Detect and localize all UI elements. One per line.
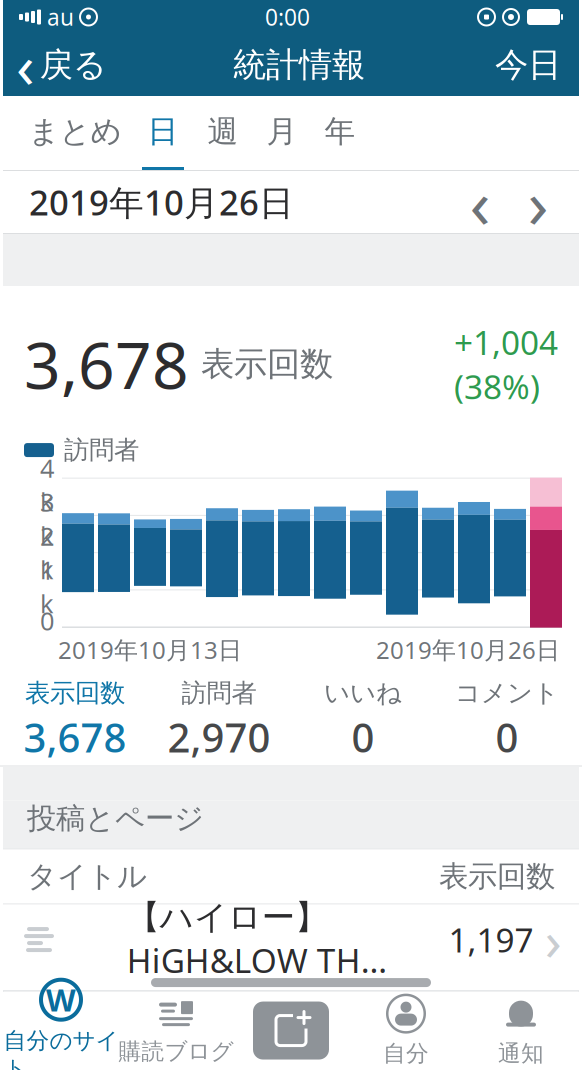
staticText: 表示回数 [25, 677, 125, 708]
staticText: 1,197 [449, 917, 534, 962]
staticText: 年 [324, 113, 355, 150]
button[interactable]: 次の日 [509, 173, 567, 231]
staticText: 2019年10月13日 [58, 634, 242, 665]
staticText: 0:00 [265, 2, 310, 32]
staticText: › [545, 903, 562, 976]
button[interactable]: コメント [435, 681, 579, 765]
button[interactable]: 日 [133, 96, 193, 170]
button[interactable]: 前の日 [451, 173, 509, 231]
staticText: 日 [147, 113, 178, 150]
staticText: 訪問者 [181, 677, 256, 708]
staticText: 0 [495, 710, 518, 764]
button[interactable]: ‹ [3, 36, 121, 94]
button[interactable]: 週 [193, 96, 253, 170]
button[interactable]: 【ハイロー】HiGH&LOW TH… [3, 904, 579, 974]
staticText: 2019年10月26日 [376, 634, 560, 665]
button[interactable]: 今日 [477, 36, 579, 94]
staticText: 自分のサイト [3, 1027, 118, 1070]
button[interactable]: W [3, 991, 118, 1069]
staticText: 3k [40, 485, 54, 552]
staticText: 訪問者 [64, 434, 139, 466]
staticText: 通知 [498, 1040, 544, 1067]
staticText: 購読ブログ [118, 1038, 233, 1065]
staticText: 0 [40, 604, 54, 637]
staticText: ‹ [469, 157, 490, 247]
staticText: 4k [40, 451, 54, 518]
staticText: まとめ [28, 113, 121, 150]
staticText: 0 [351, 710, 374, 764]
staticText: 表示回数 [439, 858, 555, 894]
staticText: 3,678 [23, 710, 126, 764]
button[interactable]: いいね [291, 681, 435, 765]
button[interactable]: 年 [311, 96, 369, 170]
staticText: コメント [455, 677, 559, 708]
staticText: 今日 [495, 44, 561, 85]
staticText: au [47, 2, 74, 32]
staticText: W [46, 979, 76, 1020]
button[interactable]: 自分 [348, 991, 463, 1069]
staticText: 週 [207, 113, 238, 150]
staticText: 投稿とページ [27, 800, 204, 836]
staticText: 自分 [383, 1040, 429, 1067]
staticText: 1k [40, 553, 54, 620]
button[interactable]: 表示回数 [3, 681, 147, 765]
staticText: いいね [324, 677, 402, 708]
staticText: 2019年10月26日 [29, 179, 294, 225]
staticText: ‹ [16, 25, 35, 105]
staticText: 統計情報 [233, 44, 365, 85]
staticText: 2,970 [167, 710, 270, 764]
staticText: 戻る [40, 44, 107, 85]
button[interactable]: 新規作成 [233, 991, 348, 1069]
staticText: 月 [266, 113, 297, 150]
button[interactable]: 購読ブログ [118, 991, 233, 1069]
staticText: › [527, 157, 548, 247]
button[interactable]: まとめ [17, 96, 133, 170]
button[interactable]: 月 [253, 96, 311, 170]
staticText: +1,004 (38%) [454, 320, 558, 408]
button[interactable]: 通知 [463, 991, 578, 1069]
staticText: 表示回数 [201, 344, 333, 385]
staticText: 【ハイロー】HiGH&LOW TH… [127, 897, 387, 982]
staticText: 2k [40, 519, 54, 586]
staticText: 3,678 [24, 322, 189, 407]
staticText: タイトル [27, 858, 147, 894]
button[interactable]: 訪問者 [147, 681, 291, 765]
